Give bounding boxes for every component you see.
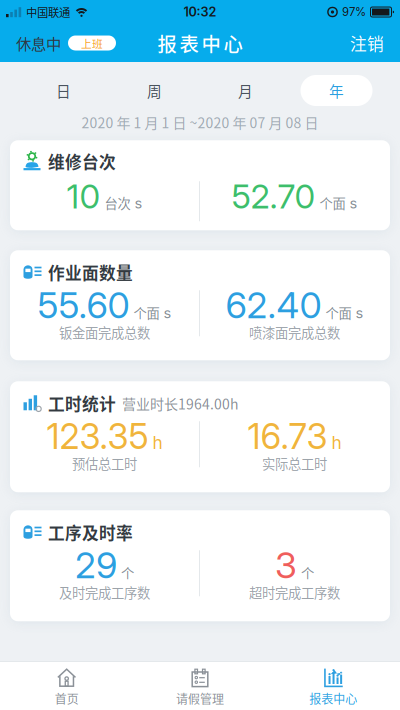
staticText: 报表中心 <box>157 29 242 57</box>
staticText: s <box>349 194 357 212</box>
staticText: 个 <box>301 563 314 582</box>
staticText: 个 <box>121 563 134 582</box>
staticText: 工序及时率 <box>48 520 133 544</box>
staticText: s <box>134 194 142 212</box>
staticText: h <box>152 432 162 453</box>
staticText: 作业面数量 <box>48 260 133 284</box>
staticText: 超时完成工序数 <box>249 583 340 602</box>
staticText: 2020 年 1 月 1 日 ~2020 年 07 月 08 日 <box>81 112 318 132</box>
staticText: 29 <box>75 543 117 587</box>
staticText: 喷漆面完成总数 <box>249 323 340 342</box>
button[interactable]: 休息中 <box>16 32 61 54</box>
staticText: 个面 <box>319 193 345 212</box>
button[interactable]: 报表中心 <box>267 667 400 705</box>
button[interactable]: 注销 <box>350 31 384 55</box>
staticText: 上班 <box>81 35 103 51</box>
staticText: 个面 <box>133 303 159 322</box>
staticText: 注销 <box>350 31 384 55</box>
staticText: 维修台次 <box>48 149 116 173</box>
staticText: s <box>355 304 363 322</box>
button[interactable]: 日 <box>18 75 109 106</box>
staticText: 预估总工时 <box>72 454 137 473</box>
staticText: 周 <box>147 80 162 101</box>
staticText: 年 <box>329 80 344 101</box>
staticText: 休息中 <box>16 32 61 54</box>
staticText: 52.70 <box>231 176 315 216</box>
staticText: 台次 <box>104 193 130 212</box>
staticText: 钣金面完成总数 <box>59 323 150 342</box>
button[interactable]: 请假管理 <box>133 667 267 705</box>
staticText: 营业时长1964.00h <box>122 393 238 413</box>
button[interactable]: 月 <box>200 75 291 106</box>
staticText: 工时统计 <box>48 391 116 415</box>
staticText: 报表中心 <box>309 690 357 707</box>
staticText: h <box>331 432 341 453</box>
staticText: 55.60 <box>37 283 129 327</box>
button[interactable]: 首页 <box>0 667 133 705</box>
staticText: 97% <box>342 5 366 19</box>
staticText: 中国联通 <box>26 4 70 20</box>
button[interactable]: 周 <box>109 75 200 106</box>
staticText: 实际总工时 <box>262 454 327 473</box>
staticText: 首页 <box>55 690 79 707</box>
staticText: s <box>163 304 171 322</box>
staticText: 123.35 <box>46 415 148 457</box>
staticText: 16.73 <box>247 415 327 457</box>
staticText: 62.40 <box>225 283 321 327</box>
staticText: 及时完成工序数 <box>59 583 150 602</box>
staticText: 日 <box>56 80 71 101</box>
staticText: 个面 <box>325 303 351 322</box>
button[interactable]: 年 <box>291 75 382 106</box>
staticText: 3 <box>275 543 297 587</box>
staticText: 10 <box>66 176 100 216</box>
button[interactable]: 上班 <box>68 35 116 50</box>
staticText: 10:32 <box>183 4 216 20</box>
staticText: 月 <box>238 80 253 101</box>
staticText: 请假管理 <box>176 690 224 707</box>
